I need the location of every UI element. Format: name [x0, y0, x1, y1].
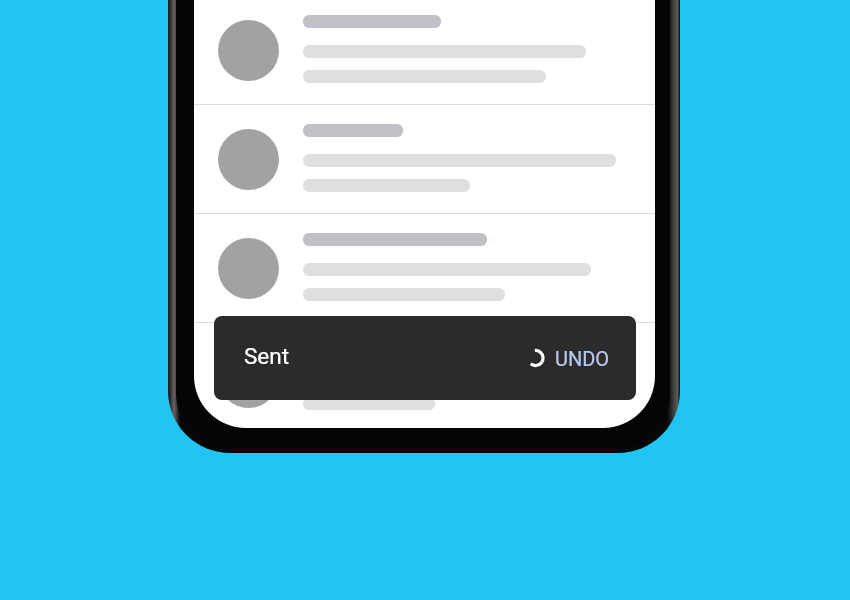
- button[interactable]: [194, 104, 655, 213]
- staticText: Sent: [244, 343, 290, 369]
- staticText: UNDO: [555, 347, 610, 370]
- button[interactable]: [194, 0, 655, 104]
- other: Undoing, in progress: [525, 347, 547, 369]
- button[interactable]: [194, 322, 655, 428]
- button[interactable]: Sent: [214, 316, 636, 400]
- button[interactable]: [194, 213, 655, 322]
- button[interactable]: Undoing, in progress: [512, 325, 622, 389]
